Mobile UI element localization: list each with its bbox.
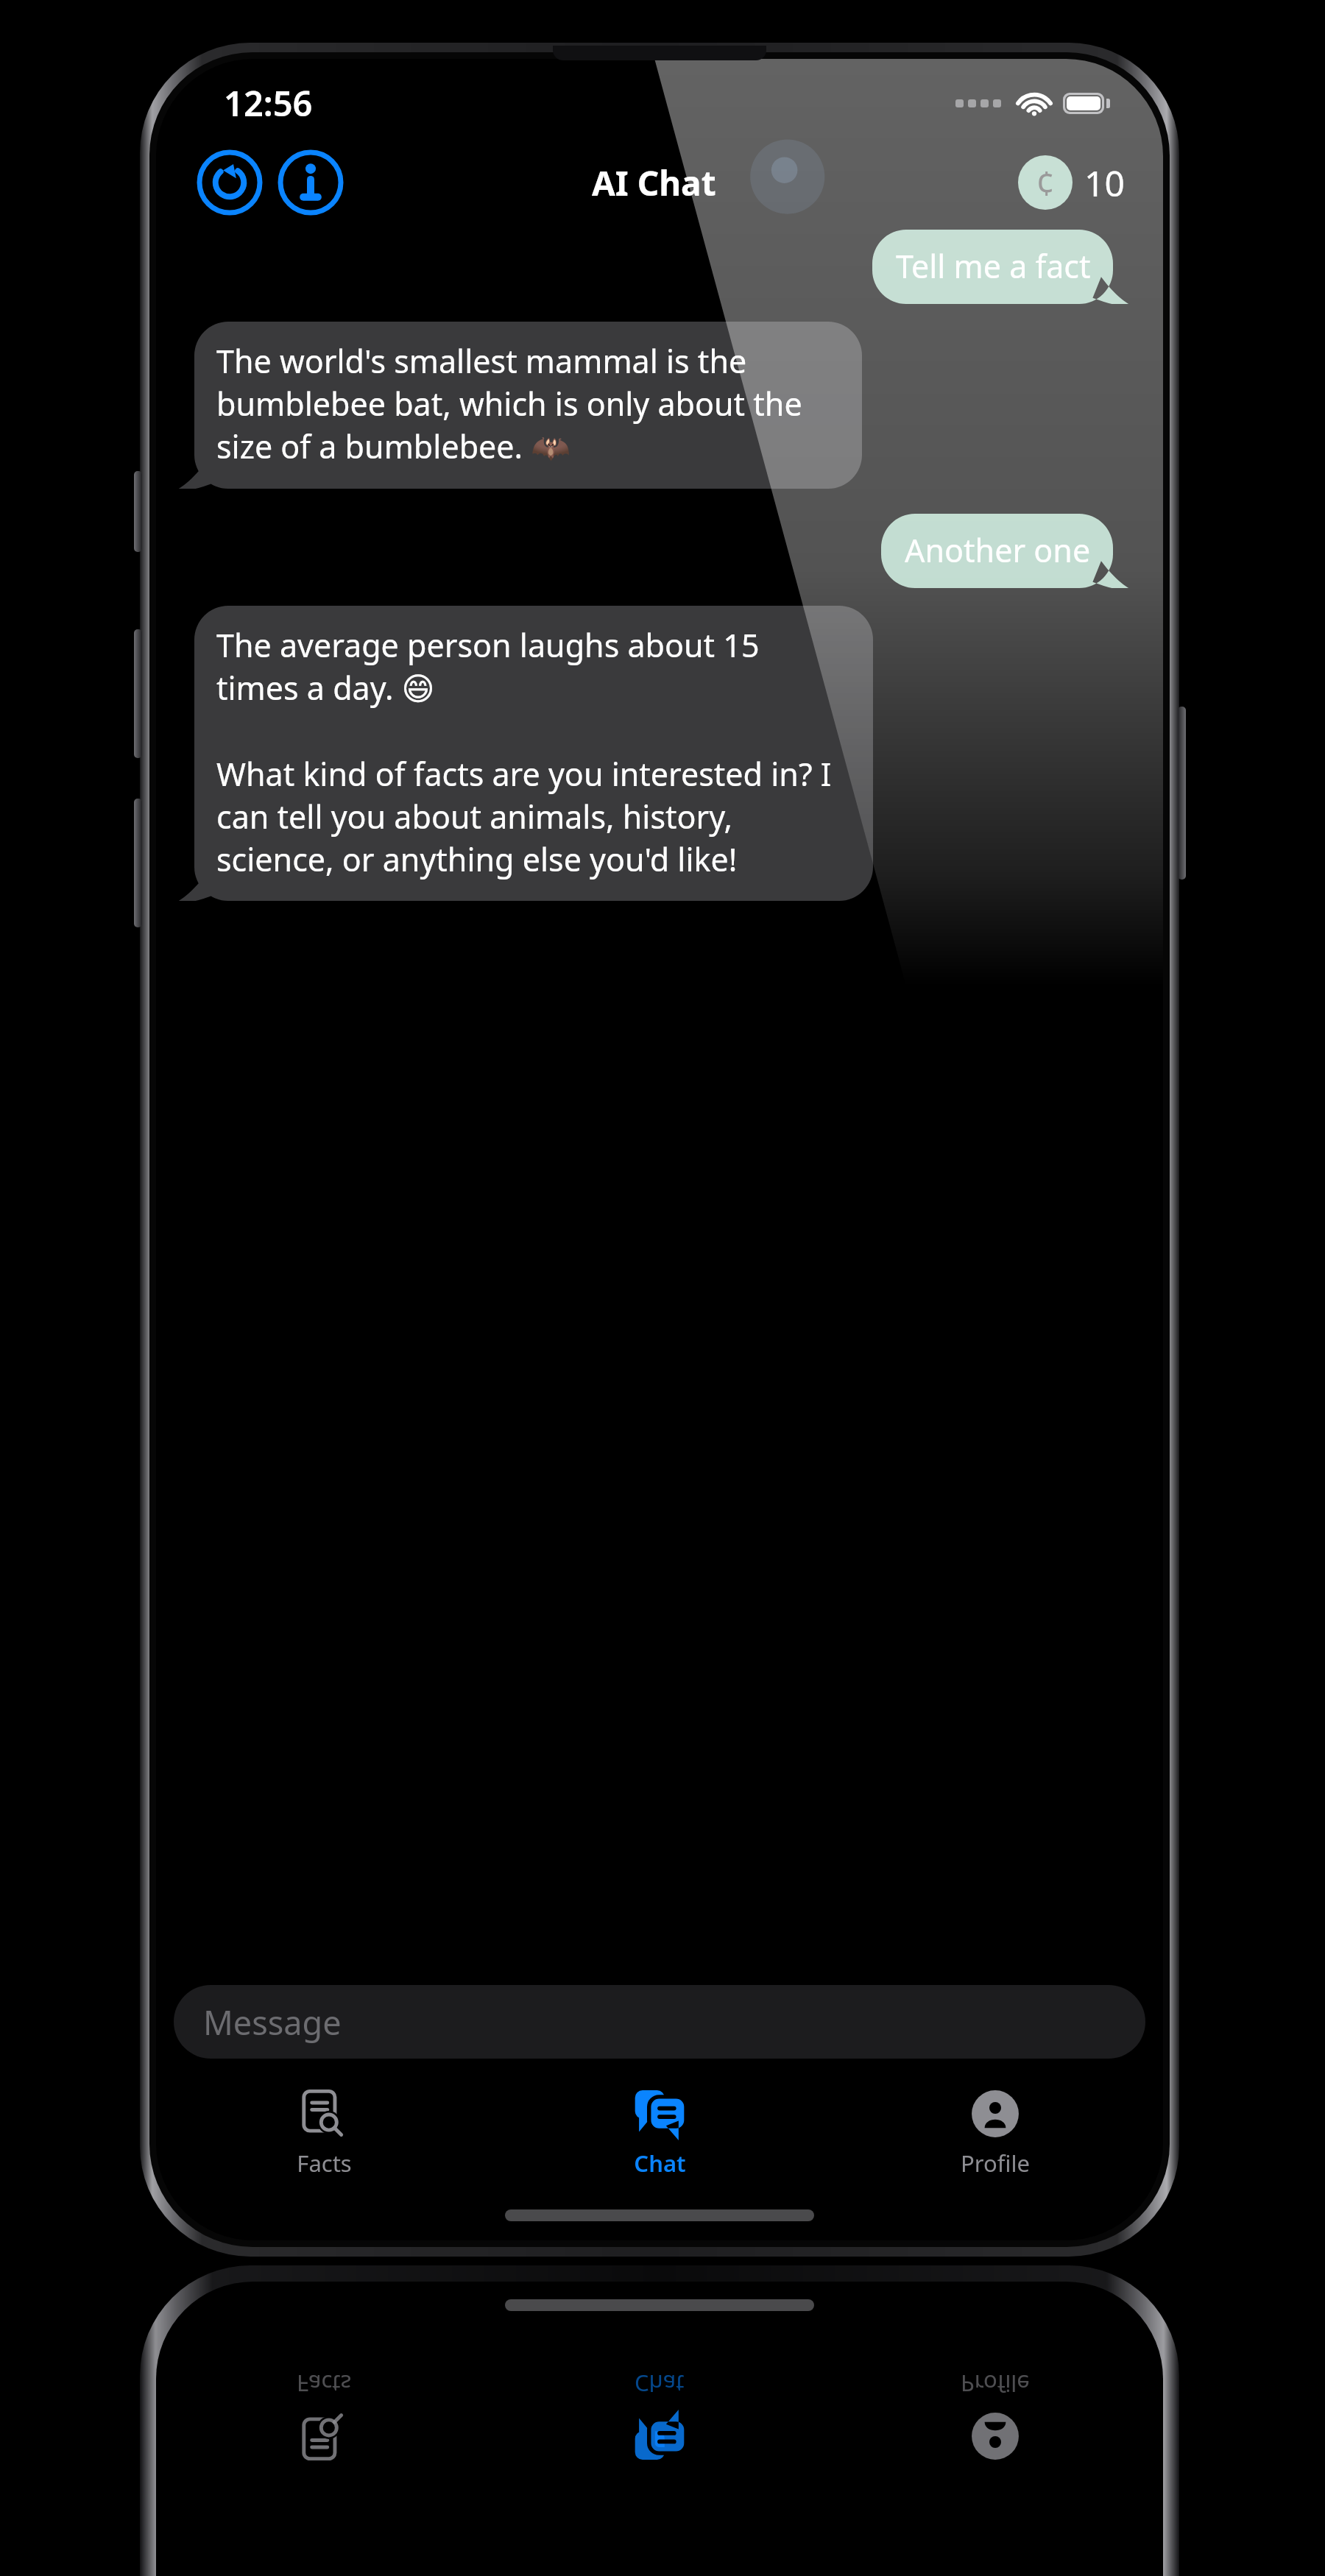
staticText: Profile bbox=[961, 2148, 1030, 2179]
staticText: The world's smallest mammal is the bumbl… bbox=[216, 339, 838, 468]
button[interactable]: The world's smallest mammal is the bumbl… bbox=[174, 322, 862, 489]
staticText: Profile bbox=[961, 2368, 1030, 2399]
staticText: Chat bbox=[634, 2148, 686, 2179]
button[interactable]: Message bbox=[174, 1985, 1145, 2059]
button[interactable]: Chat bbox=[492, 2076, 827, 2190]
staticText: ¢ bbox=[1036, 160, 1056, 206]
button[interactable]: Facts bbox=[156, 2076, 492, 2190]
button[interactable]: Another one bbox=[881, 514, 1134, 588]
staticText: The average person laughs about 15 times… bbox=[216, 623, 849, 880]
button[interactable]: Information bbox=[275, 147, 346, 218]
staticText: Another one bbox=[905, 528, 1091, 572]
button[interactable]: Refresh bbox=[194, 147, 265, 218]
staticText: AI Chat bbox=[592, 160, 716, 206]
button[interactable]: Tell me a fact bbox=[872, 230, 1134, 304]
staticText: Facts bbox=[297, 2368, 352, 2399]
staticText: Chat bbox=[635, 2368, 685, 2399]
staticText: 12:56 bbox=[224, 79, 313, 127]
button[interactable]: Profile bbox=[827, 2076, 1163, 2190]
staticText: Tell me a fact bbox=[896, 244, 1091, 288]
staticText: Facts bbox=[297, 2148, 352, 2179]
button[interactable]: ¢ bbox=[1018, 155, 1125, 210]
staticText: 10 bbox=[1084, 159, 1125, 207]
button[interactable]: The average person laughs about 15 times… bbox=[174, 606, 873, 901]
staticText: Message bbox=[203, 2000, 342, 2045]
